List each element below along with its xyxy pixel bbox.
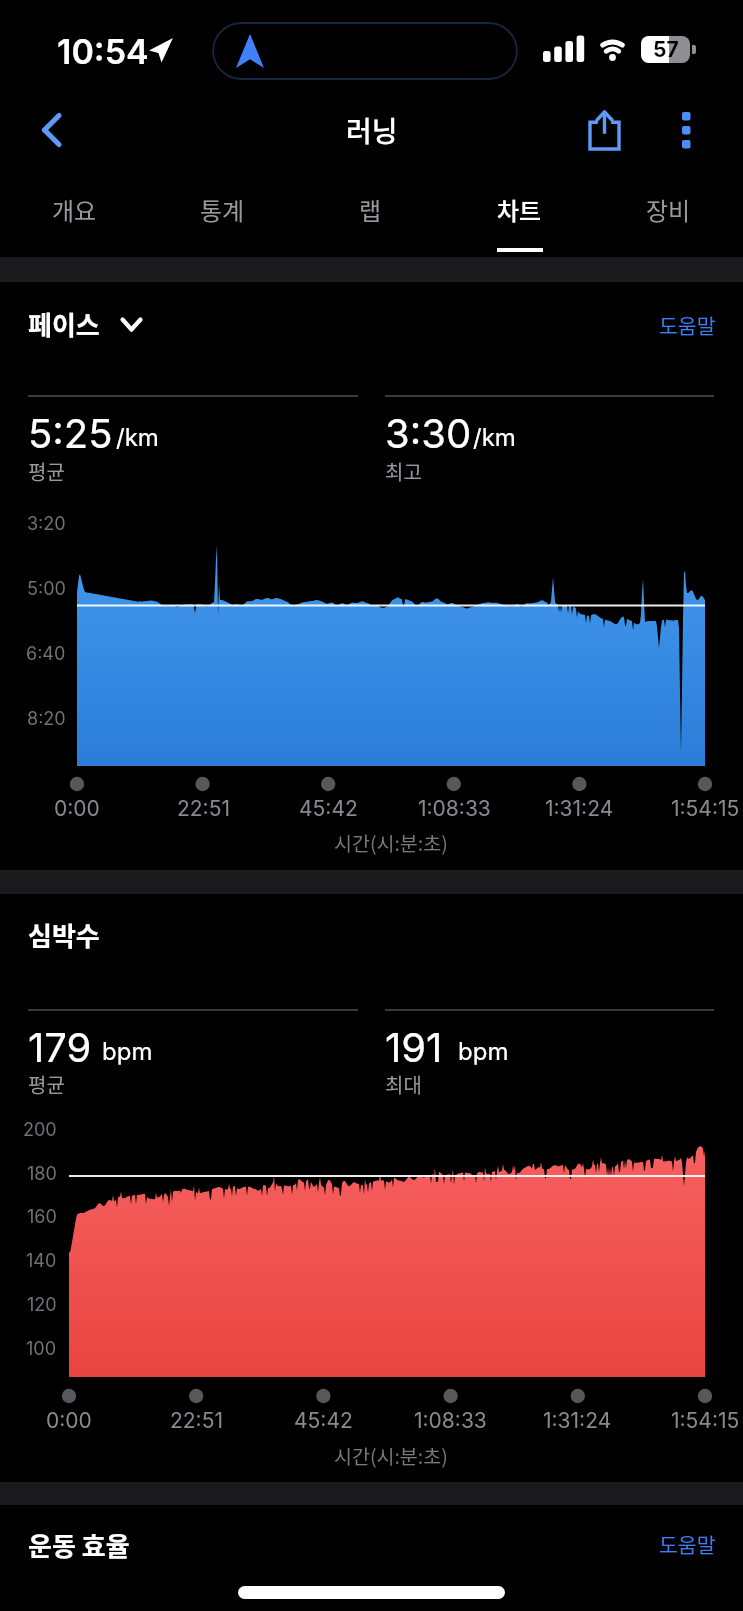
staticText: 160 xyxy=(27,1206,57,1228)
staticText: 1:54:15 xyxy=(671,796,740,821)
staticText: 191 xyxy=(385,1023,443,1071)
staticText: 장비 xyxy=(646,192,691,227)
staticText: 시간(시:분:초) xyxy=(334,828,448,856)
staticText: 1:08:33 xyxy=(418,796,491,821)
staticText: 페이스 xyxy=(28,305,100,343)
button[interactable]: 통계 xyxy=(148,176,296,254)
button[interactable] xyxy=(664,102,708,158)
staticText: 최대 xyxy=(385,1070,422,1099)
button[interactable]: 도움말 xyxy=(560,305,716,345)
button[interactable]: 랩 xyxy=(296,176,445,254)
staticText: 5:25 xyxy=(28,409,113,457)
button[interactable]: 페이스 xyxy=(28,302,143,346)
staticText: 22:51 xyxy=(170,1408,223,1433)
button[interactable]: 차트 xyxy=(445,176,594,254)
button[interactable] xyxy=(28,105,76,155)
staticText: 180 xyxy=(27,1163,57,1185)
staticText: 1:08:33 xyxy=(414,1408,487,1433)
staticText: 179 xyxy=(28,1023,92,1071)
staticText: 5:00 xyxy=(27,578,66,600)
staticText: 차트 xyxy=(497,192,542,227)
staticText: bpm xyxy=(458,1037,509,1066)
staticText: 200 xyxy=(23,1119,57,1141)
staticText: 운동 효율 xyxy=(28,1526,130,1564)
staticText: 45:42 xyxy=(294,1408,353,1433)
button[interactable]: 장비 xyxy=(594,176,743,254)
button[interactable]: 개요 xyxy=(0,176,148,254)
staticText: /km xyxy=(116,423,159,452)
staticText: 57 xyxy=(653,37,679,62)
staticText: 개요 xyxy=(52,192,97,227)
staticText: 10:54 xyxy=(57,31,149,72)
staticText: 평균 xyxy=(28,1070,65,1099)
staticText: 시간(시:분:초) xyxy=(334,1441,448,1469)
staticText: 3:20 xyxy=(27,513,66,535)
button[interactable]: 도움말 xyxy=(560,1524,716,1564)
staticText: 1:31:24 xyxy=(545,796,614,821)
staticText: 3:30 xyxy=(385,409,472,457)
staticText: 심박수 xyxy=(28,916,100,954)
staticText: 랩 xyxy=(359,192,382,227)
staticText: 평균 xyxy=(28,457,65,486)
staticText: /km xyxy=(473,423,516,452)
staticText: 120 xyxy=(27,1294,57,1316)
staticText: 통계 xyxy=(200,192,245,227)
staticText: bpm xyxy=(102,1037,153,1066)
staticText: 100 xyxy=(26,1338,57,1360)
staticText: 0:00 xyxy=(54,796,100,821)
button[interactable] xyxy=(580,102,628,158)
staticText: 러닝 xyxy=(346,110,398,151)
staticText: 6:40 xyxy=(26,643,66,665)
staticText: 1:31:24 xyxy=(543,1408,612,1433)
staticText: 1:54:15 xyxy=(671,1408,740,1433)
staticText: 0:00 xyxy=(46,1408,92,1433)
staticText: 22:51 xyxy=(177,796,230,821)
staticText: 45:42 xyxy=(299,796,358,821)
staticText: 140 xyxy=(26,1250,57,1272)
staticText: 최고 xyxy=(385,457,422,486)
staticText: 도움말 xyxy=(659,1529,716,1559)
staticText: 도움말 xyxy=(659,310,716,340)
staticText: 8:20 xyxy=(27,708,66,730)
